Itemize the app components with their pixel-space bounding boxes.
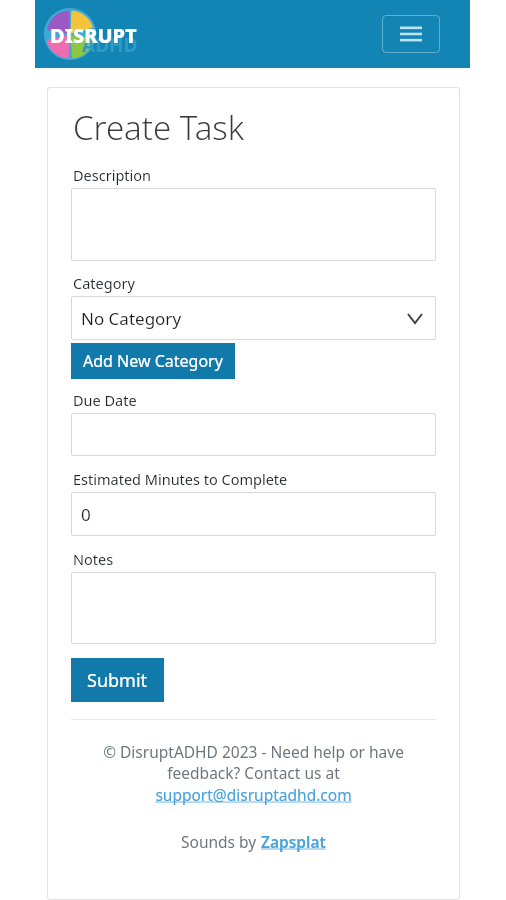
staticText: Notes (73, 549, 114, 569)
staticText: No Category (81, 307, 182, 330)
button[interactable]: support@disruptadhd.com (71, 784, 436, 805)
staticText: 0 (81, 503, 91, 526)
staticText: Sounds by (181, 831, 261, 852)
button[interactable] (71, 188, 436, 261)
button[interactable]: Menu (382, 15, 440, 53)
button[interactable] (71, 413, 436, 456)
staticText: Due Date (73, 390, 137, 410)
staticText: DISRUPT (50, 22, 137, 49)
staticText: ADHD (82, 32, 138, 58)
staticText: Add New Category (83, 350, 223, 372)
button[interactable]: DisruptADHD home (44, 6, 154, 62)
staticText: Category (73, 273, 135, 293)
button[interactable]: 0 (71, 492, 436, 536)
staticText: © DisruptADHD 2023 - Need help or have f… (71, 741, 436, 784)
staticText: Submit (87, 668, 148, 693)
button[interactable]: Zapsplat (261, 831, 326, 852)
button[interactable] (71, 572, 436, 644)
button[interactable]: Add New Category (71, 343, 235, 379)
staticText: Zapsplat (261, 831, 326, 852)
button[interactable]: No Category (71, 296, 436, 340)
staticText: support@disruptadhd.com (71, 784, 436, 805)
button[interactable]: Submit (71, 658, 164, 702)
staticText: Create Task (73, 105, 245, 150)
staticText: Description (73, 165, 152, 185)
staticText: Estimated Minutes to Complete (73, 469, 288, 489)
